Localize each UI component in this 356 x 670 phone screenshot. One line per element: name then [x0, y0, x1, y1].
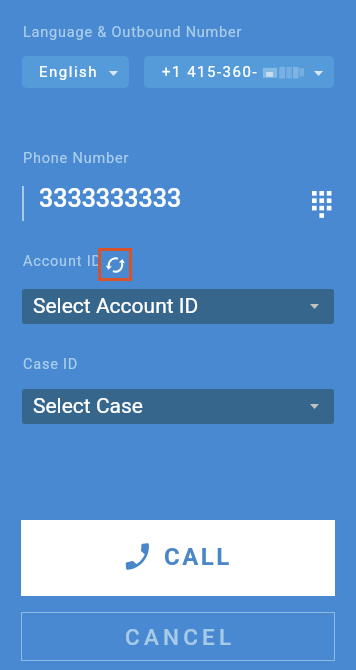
button[interactable]: Refresh account list	[98, 248, 132, 281]
staticText: 3333333333	[39, 184, 182, 213]
staticText: Language & Outbound Number	[23, 24, 243, 41]
button[interactable]: CANCEL	[21, 612, 335, 661]
staticText: Phone Number	[23, 150, 130, 167]
button[interactable]: English	[22, 56, 129, 88]
staticText: Select Account ID	[33, 294, 199, 319]
staticText: English	[39, 63, 99, 81]
staticText: CALL	[164, 543, 232, 571]
button[interactable]: Dial pad	[301, 187, 341, 221]
staticText: Account ID	[23, 253, 102, 270]
staticText: CANCEL	[125, 624, 236, 650]
button[interactable]: Select Case	[22, 389, 334, 424]
button[interactable]: Select Account ID	[22, 289, 334, 324]
staticText: Case ID	[23, 356, 79, 373]
button[interactable]: CALL	[21, 520, 335, 596]
staticText: +1 415-360-	[162, 63, 259, 81]
button[interactable]: +1 415-360-	[144, 56, 334, 88]
staticText: Select Case	[33, 394, 143, 419]
